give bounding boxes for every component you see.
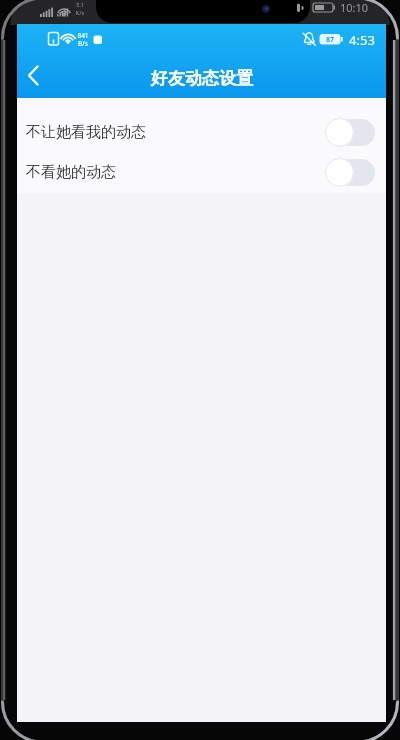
button[interactable] [325,158,375,187]
staticText: 不让她看我的动态 [26,123,146,142]
staticText: 3.1 K/s [73,1,87,23]
staticText: 841 B/s [75,31,91,49]
staticText: 不看她的动态 [26,163,116,182]
button[interactable]: 不看她的动态 [17,150,386,195]
staticText: 好友动态设置 [151,68,253,89]
staticText: 10:10 [338,0,370,15]
staticText: 4:53 [344,31,380,47]
button[interactable] [17,56,65,98]
button[interactable]: 不让她看我的动态 [17,110,386,155]
button[interactable] [325,118,375,147]
staticText: 87 [320,35,340,45]
